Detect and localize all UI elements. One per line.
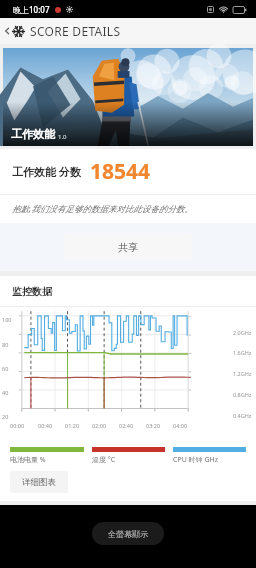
staticText: CPU 时钟 GHz <box>173 455 218 465</box>
staticText: 00:40 <box>38 422 53 429</box>
staticText: 工作效能 <box>11 127 55 141</box>
staticText: 温度 °C <box>92 455 116 465</box>
staticText: 40 <box>2 389 9 396</box>
staticText: 监控数据 <box>12 285 52 298</box>
staticText: 1.6GHz <box>233 349 252 356</box>
staticText: 2.0GHz <box>233 329 252 336</box>
staticText: 工作效能 分数 <box>12 164 81 179</box>
staticText: 1.0 <box>58 133 67 141</box>
staticText: 晚上10:07 <box>13 4 50 15</box>
staticText: 100 <box>2 316 12 323</box>
staticText: 全螢幕顯示 <box>108 529 148 539</box>
staticText: 00:00 <box>10 422 25 429</box>
button[interactable]: Back <box>0 18 127 44</box>
staticText: 02:40 <box>119 422 134 429</box>
staticText: 1.2GHz <box>233 370 252 377</box>
staticText: 20 <box>2 413 9 420</box>
staticText: 02:00 <box>92 422 107 429</box>
staticText: 0.8GHz <box>233 391 252 398</box>
staticText: SCORE DETAILS <box>30 23 121 39</box>
staticText: 0.4GHz <box>233 412 252 419</box>
staticText: 共享 <box>118 241 138 254</box>
staticText: 抱歉,我们没有足够的数据来对比此设备的分数。 <box>12 203 193 215</box>
staticText: 04:00 <box>173 422 188 429</box>
button[interactable]: 详细图表 <box>10 471 68 493</box>
staticText: 60 <box>2 365 9 372</box>
staticText: 18544 <box>90 157 151 186</box>
staticText: 03:20 <box>146 422 161 429</box>
button[interactable]: 全螢幕顯示 <box>92 522 164 545</box>
staticText: 80 <box>2 341 9 348</box>
button[interactable]: 共享 <box>64 233 192 261</box>
staticText: 01:20 <box>65 422 80 429</box>
staticText: 电池电量 % <box>10 455 46 465</box>
staticText: 详细图表 <box>22 477 56 488</box>
